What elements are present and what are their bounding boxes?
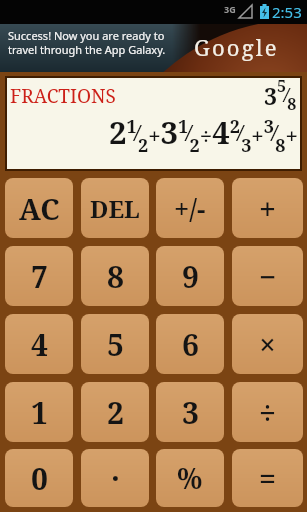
staticText: 5 (107, 324, 124, 365)
button[interactable]: 1 (5, 382, 73, 442)
button[interactable]: 9 (156, 246, 224, 306)
button[interactable]: 5 (81, 314, 149, 374)
staticText: 0 (31, 458, 48, 499)
staticText: 35⁄8 (264, 75, 297, 115)
staticText: 4 (31, 324, 48, 365)
button[interactable]: ÷ (232, 382, 303, 442)
button[interactable]: 8 (81, 246, 149, 306)
button[interactable]: 0 (5, 449, 73, 507)
staticText: 3 (182, 392, 199, 433)
button[interactable]: Success! Now you are ready to travel thr… (0, 24, 307, 72)
button[interactable]: · (81, 449, 149, 507)
staticText: 3G (224, 3, 236, 15)
staticText: 7 (31, 256, 48, 297)
button[interactable]: − (232, 246, 303, 306)
button[interactable]: 6 (156, 314, 224, 374)
button[interactable]: 3 (156, 382, 224, 442)
button[interactable]: 4 (5, 314, 73, 374)
staticText: 9 (182, 256, 199, 297)
staticText: 8 (107, 256, 124, 297)
staticText: 1 (31, 392, 48, 433)
staticText: 2:53 (272, 2, 302, 22)
button[interactable]: % (156, 449, 224, 507)
staticText: Google (194, 32, 279, 62)
staticText: · (111, 458, 120, 499)
staticText: − (259, 256, 277, 297)
staticText: % (177, 459, 203, 497)
staticText: FRACTIONS (10, 83, 116, 109)
button[interactable]: 2 (81, 382, 149, 442)
button[interactable]: +/- (156, 178, 224, 238)
staticText: + (259, 188, 276, 229)
staticText: AC (19, 189, 60, 228)
button[interactable]: × (232, 314, 303, 374)
staticText: 21⁄2+31⁄2÷42⁄3+3⁄8+ (109, 111, 298, 157)
staticText: ÷ (259, 392, 276, 433)
staticText: +/- (174, 190, 206, 227)
staticText: = (259, 458, 276, 499)
button[interactable]: DEL (81, 178, 149, 238)
staticText: Success! Now you are ready to travel thr… (8, 28, 166, 58)
button[interactable]: + (232, 178, 303, 238)
button[interactable]: = (232, 449, 303, 507)
staticText: 2 (107, 392, 124, 433)
staticText: × (259, 324, 276, 365)
staticText: DEL (90, 192, 140, 225)
button[interactable]: 7 (5, 246, 73, 306)
staticText: 6 (182, 324, 199, 365)
button[interactable]: AC (5, 178, 73, 238)
